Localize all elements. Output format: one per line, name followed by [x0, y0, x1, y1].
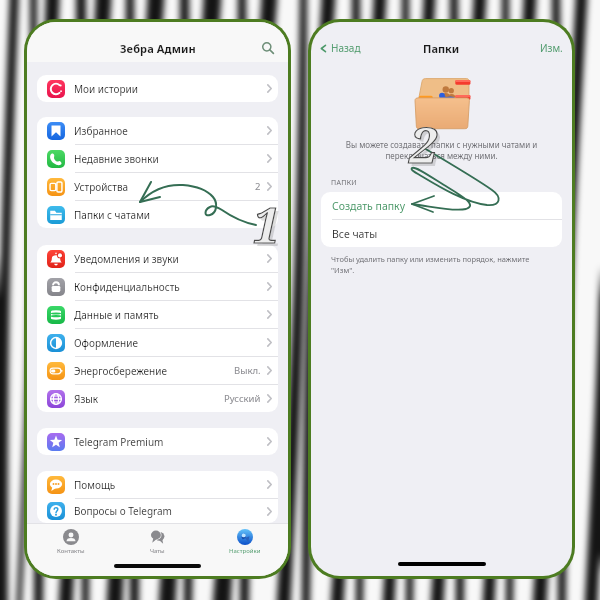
- button[interactable]: Энергосбережение: [37, 357, 278, 384]
- staticText: Контакты: [57, 547, 85, 555]
- staticText: 1: [252, 190, 280, 258]
- button[interactable]: Данные и память: [37, 301, 278, 328]
- staticText: 2: [409, 110, 437, 178]
- staticText: 2: [255, 180, 261, 193]
- button[interactable]: Создать папку: [321, 192, 562, 219]
- staticText: Оформление: [74, 336, 138, 350]
- button[interactable]: Изм.: [531, 38, 572, 58]
- staticText: 2: [409, 110, 437, 178]
- button[interactable]: Контакты: [27, 524, 114, 558]
- staticText: Telegram Premium: [74, 435, 164, 449]
- button[interactable]: Устройства: [37, 173, 278, 200]
- staticText: Чтобы удалить папку или изменить порядок…: [331, 254, 530, 275]
- button[interactable]: Уведомления и звуки: [37, 245, 278, 272]
- button[interactable]: Настройки: [201, 524, 288, 558]
- staticText: Вы можете создавать папки с нужными чата…: [321, 139, 562, 162]
- staticText: Зебра Админ: [120, 41, 196, 56]
- button[interactable]: Чаты: [114, 524, 201, 558]
- staticText: Чаты: [150, 547, 165, 555]
- button[interactable]: Search: [260, 40, 276, 56]
- staticText: Изм.: [540, 41, 563, 55]
- staticText: Устройства: [74, 180, 129, 194]
- staticText: 1: [252, 190, 280, 258]
- button[interactable]: Избранное: [37, 117, 278, 144]
- staticText: Помощь: [74, 478, 116, 492]
- staticText: Недавние звонки: [74, 152, 159, 166]
- button[interactable]: Назад: [311, 38, 367, 58]
- staticText: Выкл.: [234, 364, 261, 377]
- button[interactable]: Все чаты: [321, 220, 562, 247]
- button[interactable]: Язык: [37, 385, 278, 412]
- staticText: Папки: [423, 41, 460, 56]
- button[interactable]: Папки с чатами: [37, 201, 278, 228]
- button[interactable]: Telegram Premium: [37, 428, 278, 455]
- button[interactable]: Недавние звонки: [37, 145, 278, 172]
- staticText: Вопросы о Telegram: [74, 504, 172, 518]
- button[interactable]: Конфиденциальность: [37, 273, 278, 300]
- staticText: Все чаты: [332, 227, 378, 241]
- staticText: Мои истории: [74, 82, 138, 96]
- staticText: Назад: [331, 41, 361, 55]
- staticText: Энергосбережение: [74, 364, 167, 378]
- staticText: Избранное: [74, 124, 128, 138]
- button[interactable]: Вопросы о Telegram: [37, 499, 278, 523]
- staticText: Папки с чатами: [74, 208, 151, 222]
- button[interactable]: Мои истории: [37, 75, 278, 102]
- button[interactable]: Помощь: [37, 471, 278, 498]
- staticText: Данные и память: [74, 308, 159, 322]
- button[interactable]: Оформление: [37, 329, 278, 356]
- staticText: Конфиденциальность: [74, 280, 180, 294]
- staticText: Русский: [224, 392, 261, 405]
- staticText: Настройки: [229, 547, 261, 555]
- staticText: ПАПКИ: [331, 178, 357, 188]
- staticText: 2: [412, 113, 440, 181]
- staticText: Создать папку: [332, 199, 406, 213]
- staticText: 1: [255, 193, 283, 261]
- staticText: Уведомления и звуки: [74, 252, 179, 266]
- staticText: Язык: [74, 392, 99, 406]
